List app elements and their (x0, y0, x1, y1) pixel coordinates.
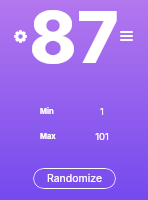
staticText: Max (40, 132, 56, 141)
button[interactable]: Settings (8, 24, 32, 48)
staticText: Min (40, 107, 54, 116)
staticText: Randomize (47, 172, 103, 185)
button[interactable]: Randomize (33, 168, 116, 189)
button[interactable]: Menu (114, 24, 138, 48)
staticText: 87 (29, 0, 119, 81)
staticText: 101 (95, 131, 109, 142)
staticText: 1 (100, 106, 104, 117)
